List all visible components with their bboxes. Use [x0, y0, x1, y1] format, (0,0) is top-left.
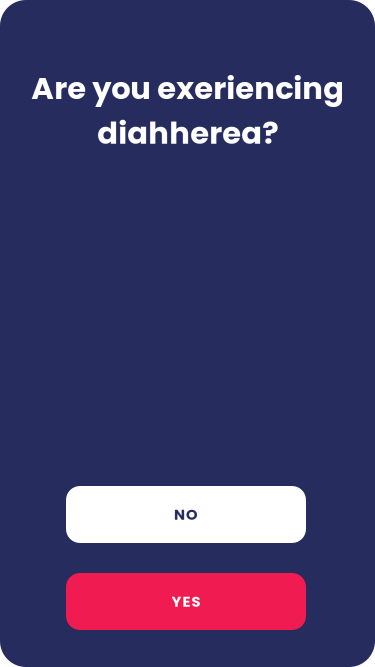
staticText: Are you exeriencing diahherea? — [31, 67, 344, 154]
staticText: NO — [174, 504, 198, 525]
button[interactable]: NO — [66, 486, 306, 543]
button[interactable]: YES — [66, 573, 306, 630]
staticText: YES — [171, 591, 200, 612]
